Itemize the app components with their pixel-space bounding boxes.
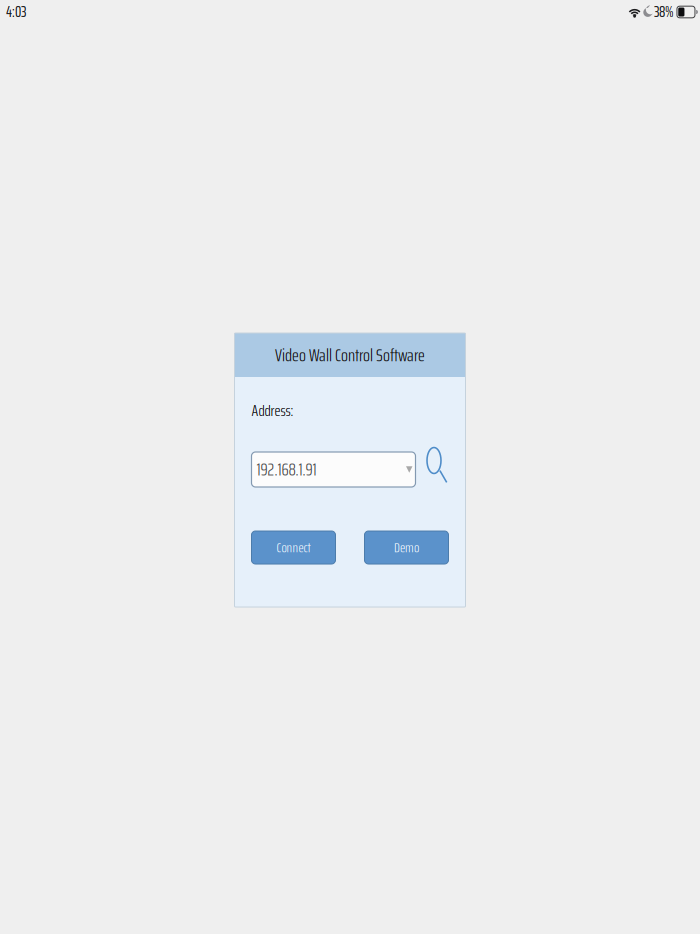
staticText: 38% xyxy=(654,0,674,24)
staticText: Address: xyxy=(251,398,293,423)
staticText: 192.168.1.91 xyxy=(256,456,316,483)
staticText: 4:03 xyxy=(6,0,26,24)
button[interactable]: Search xyxy=(426,452,447,488)
button[interactable]: Demo xyxy=(364,531,448,564)
button[interactable]: Address xyxy=(251,452,415,487)
staticText: Demo xyxy=(394,536,419,558)
button[interactable]: Connect xyxy=(251,531,335,564)
staticText: Connect xyxy=(276,536,310,558)
staticText: Video Wall Control Software xyxy=(275,341,425,369)
